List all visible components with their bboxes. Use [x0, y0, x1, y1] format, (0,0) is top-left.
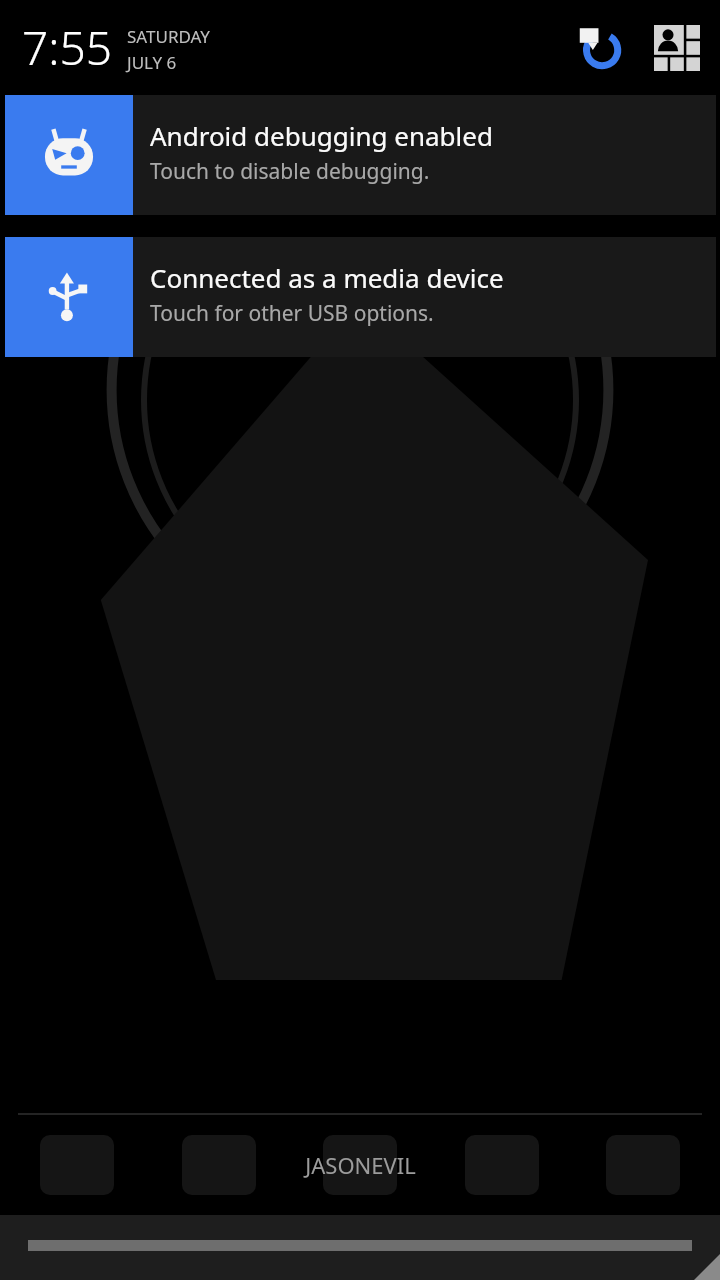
staticText: Touch to disable debugging.	[150, 157, 430, 186]
staticText: SATURDAY	[127, 25, 210, 48]
button[interactable]: Connected as a media device	[5, 237, 716, 357]
button[interactable]: Drag handle	[0, 1215, 720, 1280]
button[interactable]: App shortcut	[323, 1135, 397, 1195]
staticText: JASONEVIL	[305, 1150, 416, 1180]
staticText: Touch for other USB options.	[150, 299, 434, 328]
button[interactable]: Clear all notifications	[572, 21, 626, 75]
staticText: Connected as a media device	[150, 260, 504, 295]
staticText: Android debugging enabled	[150, 118, 493, 153]
button[interactable]: Android debugging enabled	[5, 95, 716, 215]
staticText: 7:55	[22, 16, 113, 79]
button[interactable]: Quick settings	[652, 23, 702, 73]
staticText: JULY 6	[127, 51, 177, 74]
